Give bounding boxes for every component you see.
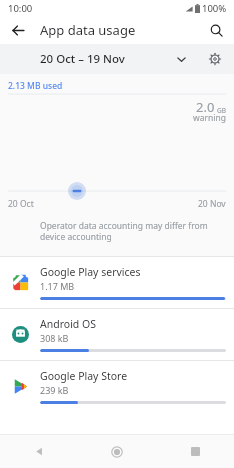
staticText: 20 Nov [198,198,226,210]
staticText: 308 kB [40,332,69,344]
button[interactable]: Back [0,435,78,468]
other: Expand date range [172,50,190,68]
staticText: 1.17 MB [40,280,75,292]
staticText: 2.0 [196,98,215,116]
staticText: warning [193,112,226,124]
staticText: Google Play services [40,265,141,279]
button[interactable]: Recents [156,435,234,468]
staticText: GB [217,106,226,115]
staticText: App data usage [40,21,136,39]
staticText: 10:00 [8,2,33,15]
staticText: Operator data accounting may differ from… [40,220,220,242]
staticText: 2.13 MB used [8,80,63,92]
staticText: 20 Oct [8,198,34,210]
button[interactable]: 20 Oct – 19 Nov [0,44,234,74]
staticText: Google Play Store [40,369,128,383]
staticText: 100% [202,2,227,15]
button[interactable]: Data usage settings [204,48,226,70]
button[interactable]: Back [6,18,30,42]
staticText: Android OS [40,317,96,331]
button[interactable]: Google Play services [0,257,234,308]
button[interactable]: Search [204,18,228,42]
staticText: 20 Oct – 19 Nov [40,51,125,67]
button[interactable]: Android OS [0,309,234,360]
button[interactable]: Google Play Store [0,361,234,412]
staticText: 239 kB [40,384,69,396]
button[interactable]: Home [78,435,156,468]
